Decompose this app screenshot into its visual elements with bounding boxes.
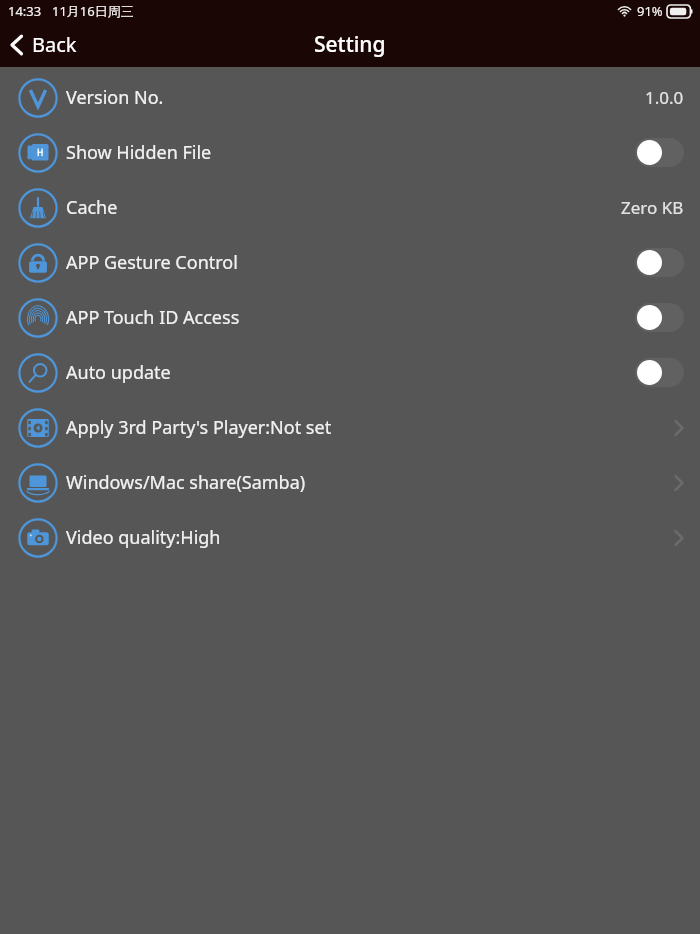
staticText: APP Gesture Control xyxy=(66,250,238,275)
staticText: Windows/Mac share(Samba) xyxy=(66,470,306,495)
button[interactable]: APP Gesture Control toggle xyxy=(635,248,684,277)
button[interactable]: Cache xyxy=(0,180,700,235)
button[interactable]: APP Gesture Control xyxy=(0,235,700,290)
button[interactable]: Show Hidden File toggle xyxy=(635,138,684,167)
staticText: Back xyxy=(32,31,77,58)
staticText: Zero KB xyxy=(621,196,684,219)
staticText: 14:33 xyxy=(8,2,42,20)
button[interactable]: Show Hidden File xyxy=(0,125,700,180)
button[interactable]: Windows/Mac share(Samba) xyxy=(0,455,700,510)
staticText: Apply 3rd Party's Player:Not set xyxy=(66,415,332,440)
button[interactable]: Auto update xyxy=(0,345,700,400)
staticText: Show Hidden File xyxy=(66,140,212,165)
staticText: 1.0.0 xyxy=(645,86,684,109)
staticText: Version No. xyxy=(66,85,164,110)
staticText: 91% xyxy=(637,2,663,20)
button[interactable]: Version No. xyxy=(0,70,700,125)
button[interactable]: Back xyxy=(0,25,91,64)
staticText: Auto update xyxy=(66,360,171,385)
button[interactable]: APP Touch ID Access xyxy=(0,290,700,345)
staticText: Cache xyxy=(66,195,118,220)
button[interactable]: Video quality:High xyxy=(0,510,700,565)
button[interactable]: Auto update toggle xyxy=(635,358,684,387)
button[interactable]: Apply 3rd Party's Player:Not set xyxy=(0,400,700,455)
staticText: Video quality:High xyxy=(66,525,221,550)
staticText: APP Touch ID Access xyxy=(66,305,240,330)
staticText: 11月16日周三 xyxy=(52,2,134,20)
button[interactable]: APP Touch ID Access toggle xyxy=(635,303,684,332)
staticText: Setting xyxy=(314,30,386,59)
